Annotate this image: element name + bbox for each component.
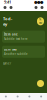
button[interactable]: Menu bbox=[2, 6, 8, 9]
staticText: Item one bbox=[4, 33, 18, 36]
button[interactable]: Tab bbox=[35, 95, 47, 97]
staticText: New bbox=[39, 18, 42, 25]
button[interactable]: Profile bbox=[39, 6, 45, 9]
button[interactable]: Search bbox=[8, 6, 14, 9]
staticText: Another subtitle bbox=[4, 52, 28, 56]
staticText: ●●● bbox=[34, 0, 43, 4]
button[interactable]: Notifications bbox=[33, 6, 39, 9]
staticText: Today bbox=[3, 16, 12, 27]
button[interactable]: Tab bbox=[12, 95, 24, 97]
staticText: Item two bbox=[4, 48, 17, 51]
button[interactable]: Tab bbox=[23, 95, 35, 97]
button[interactable]: Tab bbox=[0, 95, 12, 97]
staticText: 9:41 bbox=[4, 0, 11, 5]
button[interactable]: Compose bbox=[37, 80, 44, 87]
staticText: Subtitle text here bbox=[4, 37, 28, 41]
staticText: Earlier bbox=[3, 62, 11, 65]
